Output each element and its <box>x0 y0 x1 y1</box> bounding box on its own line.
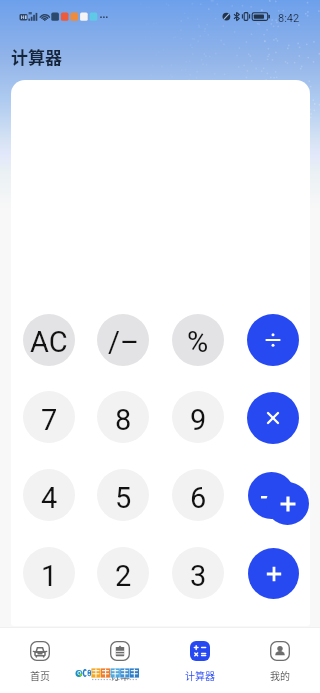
staticText: % <box>187 325 209 359</box>
button[interactable]: % <box>172 314 224 366</box>
staticText: 8 <box>115 403 132 437</box>
button[interactable]: − <box>248 472 295 519</box>
staticText: 计算器 <box>185 668 215 682</box>
button[interactable]: /– <box>97 314 149 366</box>
button[interactable]: Add <box>266 482 309 525</box>
button[interactable]: AC <box>23 314 75 366</box>
staticText: 计算器 <box>11 44 62 69</box>
button[interactable]: 9 <box>172 391 224 443</box>
staticText: AC <box>30 325 68 359</box>
button[interactable]: 4 <box>23 469 75 521</box>
staticText: 首页 <box>30 668 50 682</box>
button[interactable]: 6 <box>172 469 224 521</box>
button[interactable]: + <box>248 548 299 599</box>
staticText: 7 <box>41 403 58 437</box>
staticText: 4 <box>41 481 58 515</box>
button[interactable]: 订单 <box>80 627 160 682</box>
button[interactable]: 1 <box>23 547 75 599</box>
staticText: 6 <box>190 481 207 515</box>
staticText: 我的 <box>270 668 290 682</box>
button[interactable]: ÷ <box>247 314 299 366</box>
staticText: 8:42 <box>278 12 300 25</box>
button[interactable]: 我的 <box>240 627 320 682</box>
button[interactable]: × <box>247 392 299 444</box>
button[interactable]: 计算器 <box>160 627 240 682</box>
button[interactable]: 2 <box>97 547 149 599</box>
staticText: /– <box>108 325 139 359</box>
button[interactable]: 首页 <box>0 627 80 682</box>
staticText: 订单 <box>110 668 130 682</box>
staticText: 9 <box>190 403 207 437</box>
button[interactable]: 7 <box>23 391 75 443</box>
button[interactable]: 8 <box>97 391 149 443</box>
button[interactable]: 3 <box>172 547 224 599</box>
staticText: 1 <box>41 559 58 593</box>
button[interactable]: 5 <box>97 469 149 521</box>
staticText: 2 <box>115 559 132 593</box>
staticText: 3 <box>190 559 207 593</box>
staticText: 5 <box>115 481 132 515</box>
